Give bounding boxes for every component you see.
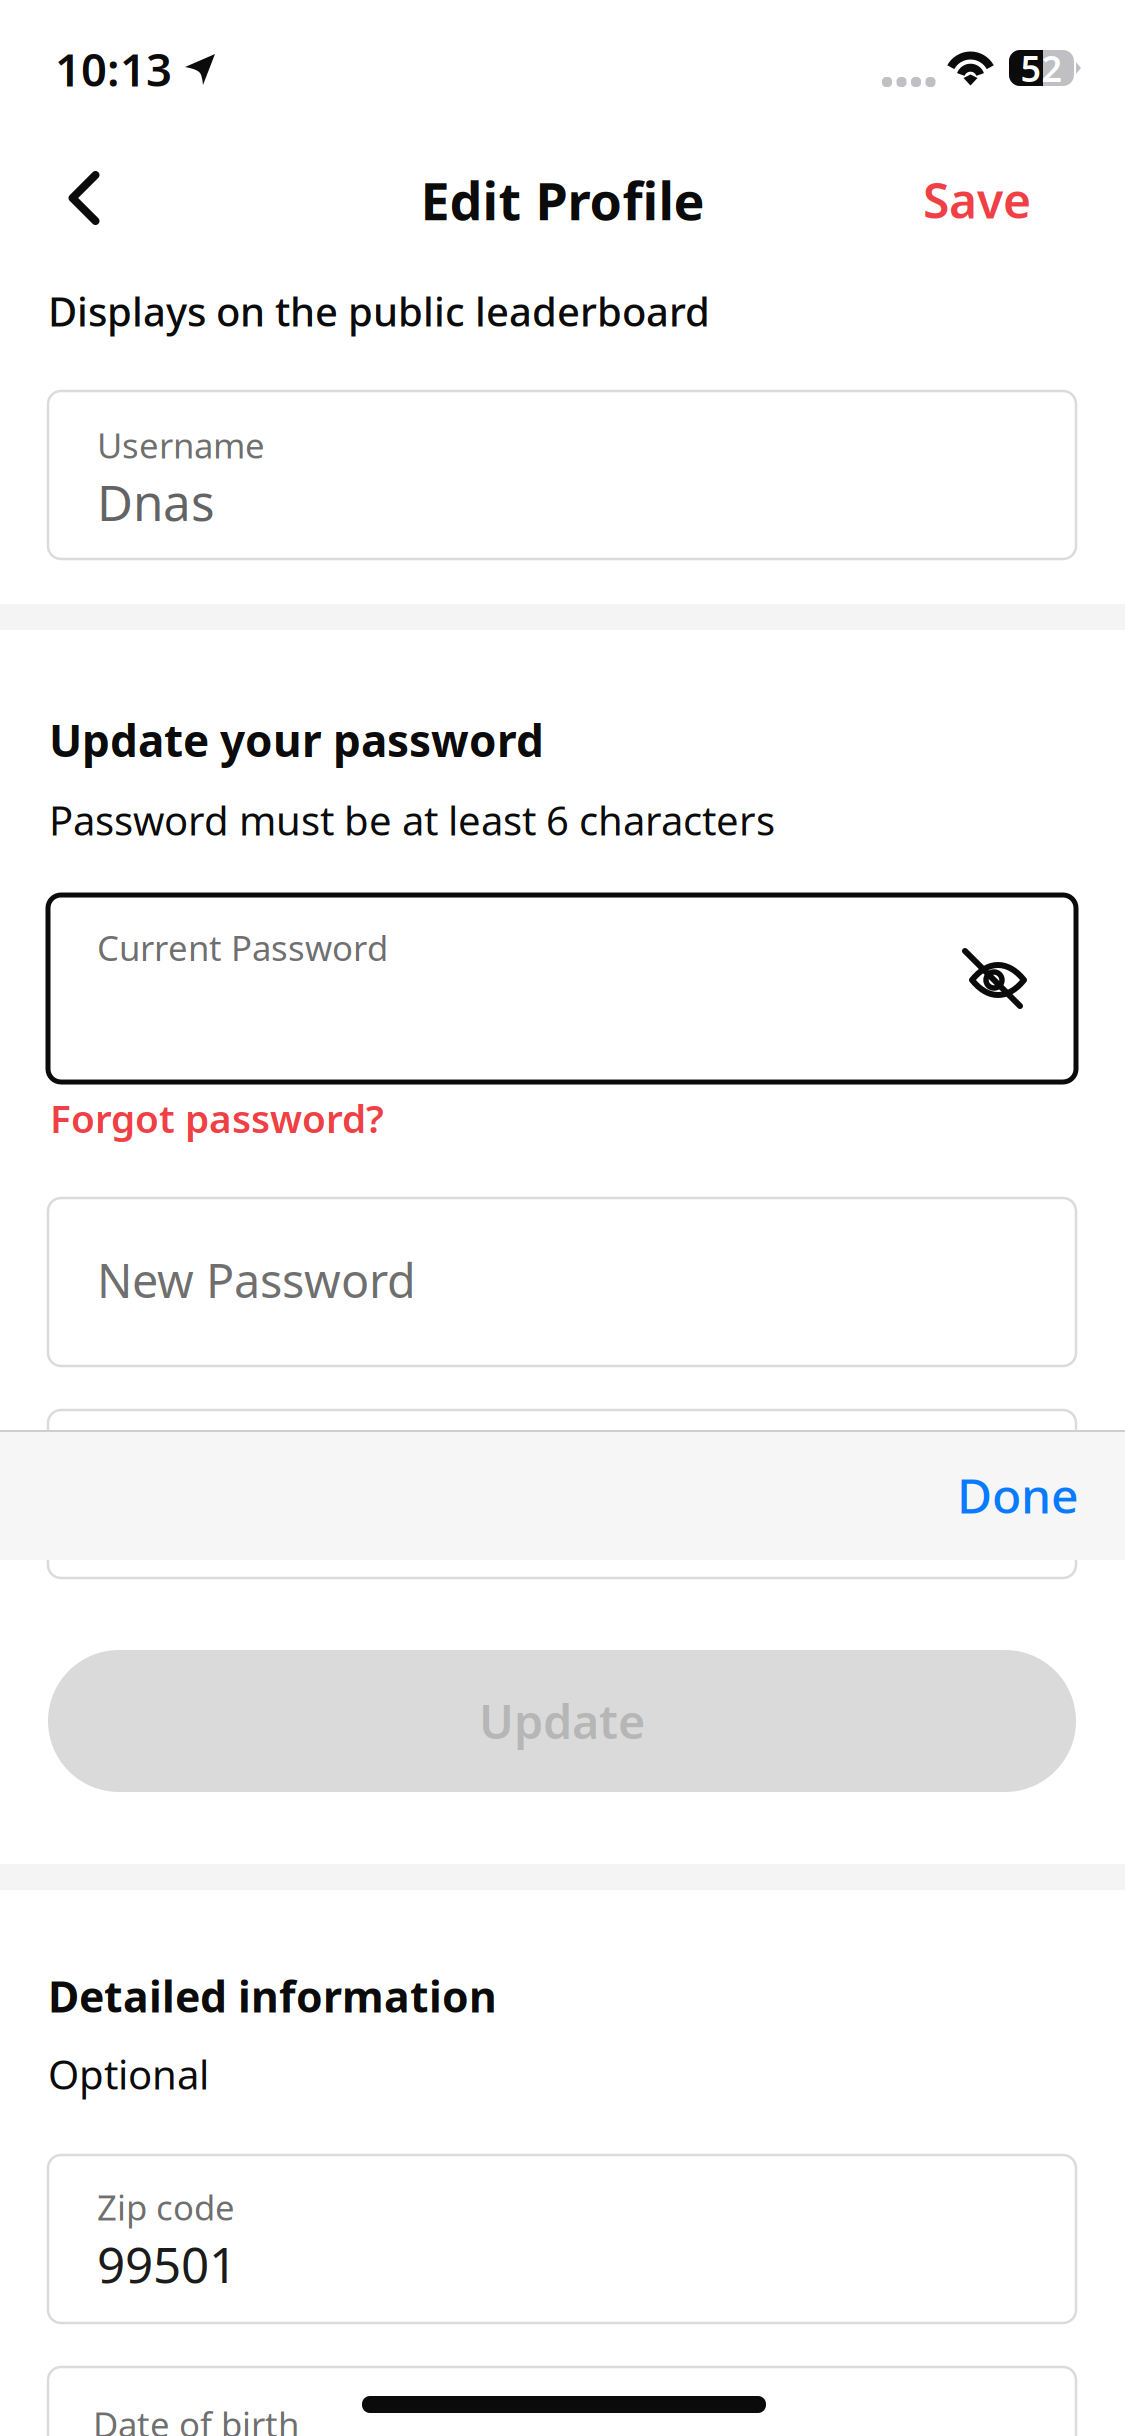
button[interactable]: Back bbox=[0, 0, 1125, 2436]
button[interactable]: Forgot password? bbox=[0, 0, 1125, 2436]
staticText: Optional bbox=[48, 2047, 209, 2100]
staticText: Update bbox=[479, 1690, 645, 1752]
staticText: Password must be at least 6 characters bbox=[49, 793, 775, 846]
button[interactable]: Update bbox=[0, 0, 1125, 2436]
staticText: Zip code bbox=[97, 2184, 235, 2230]
staticText: Detailed information bbox=[48, 1968, 497, 2024]
button[interactable]: Show password bbox=[0, 0, 1125, 2436]
staticText: Date of birth bbox=[93, 2401, 299, 2436]
staticText: 99501 bbox=[97, 2231, 237, 2296]
button[interactable]: Done bbox=[0, 0, 1125, 2436]
staticText: Update your password bbox=[49, 711, 544, 769]
staticText: 52 bbox=[1020, 44, 1062, 92]
staticText: Current Password bbox=[97, 924, 388, 970]
staticText: Displays on the public leaderboard bbox=[48, 284, 710, 337]
staticText: Username bbox=[97, 422, 265, 468]
staticText: Edit Profile bbox=[420, 165, 704, 235]
staticText: Save bbox=[923, 168, 1031, 232]
staticText: Forgot password? bbox=[50, 1092, 384, 1144]
staticText: 10:13 bbox=[55, 39, 172, 99]
staticText: Dnas bbox=[97, 469, 215, 534]
button[interactable]: Save bbox=[0, 0, 1125, 2436]
staticText: New Password bbox=[97, 1249, 416, 1311]
staticText: Done bbox=[957, 1463, 1079, 1527]
